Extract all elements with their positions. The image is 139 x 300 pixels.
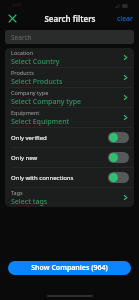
staticText: Search filters [44,13,96,24]
button[interactable]: Location [5,48,134,67]
staticText: Show Companies (964) [31,263,108,273]
staticText: Company type [11,89,49,96]
staticText: Select Equipment [11,117,70,127]
button[interactable]: Equipment [5,108,134,127]
staticText: Only new [11,154,108,162]
staticText: 9:41 [12,2,22,9]
staticText: Tags [11,189,23,196]
staticText: Select tags [11,197,48,207]
button[interactable]: Company type [5,88,134,107]
button[interactable]: Close [5,11,19,25]
button[interactable]: Only verified [5,128,134,147]
staticText: Select Company type [11,97,82,107]
button[interactable]: Tags [5,188,134,207]
staticText: Only with connections [11,174,108,182]
staticText: Select Products [11,77,63,87]
staticText: Equipment [11,109,40,116]
staticText: Select Country [11,57,60,67]
button[interactable]: Show Companies (964) [8,261,131,275]
button[interactable]: Products [5,68,134,87]
button[interactable]: clear [111,11,139,25]
staticText: Search [11,33,32,42]
staticText: Products [11,69,34,76]
staticText: clear [117,14,133,22]
staticText: Location [11,49,34,56]
button[interactable]: Only new [5,148,134,167]
staticText: Only verified [11,134,108,142]
button[interactable]: Only with connections [5,168,134,187]
button[interactable]: Search [5,30,134,44]
